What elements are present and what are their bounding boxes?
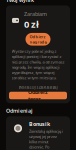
staticText: Bonusik	[29, 120, 50, 127]
staticText: Zainstaluj aplikację i używaj jej przez …	[29, 128, 63, 150]
staticText: Twój wynik	[6, 0, 34, 3]
staticText: Odmieniaj	[6, 107, 33, 114]
staticText: Wystarczy pobrać jedną z aplikacji poniż…	[11, 49, 64, 80]
staticText: Zarabiam	[24, 10, 47, 18]
staticText: 0 zł	[24, 18, 39, 30]
staticText: Odbierz nagrodę	[29, 34, 46, 44]
staticText: Odbierz teraz	[28, 88, 48, 103]
button[interactable]: Odbierz teraz	[6, 92, 70, 99]
staticText: INSTALUJ I ZARABIAJ	[18, 84, 57, 90]
